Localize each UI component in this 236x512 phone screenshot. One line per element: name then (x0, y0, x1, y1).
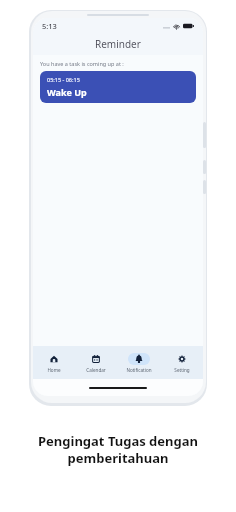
button[interactable]: Home (33, 353, 75, 373)
staticText: 5:13 (42, 21, 57, 31)
staticText: Setting (174, 367, 190, 373)
button[interactable]: Calendar (75, 353, 117, 373)
staticText: Pengingat Tugas dengan pemberitahuan (20, 432, 216, 467)
button[interactable]: 05:15 - 06:15 (40, 71, 196, 103)
staticText: Calendar (86, 367, 106, 373)
staticText: Wake Up (47, 86, 87, 98)
staticText: Notification (126, 367, 152, 373)
button[interactable]: Notification (117, 353, 160, 373)
staticText: 05:15 - 06:15 (47, 76, 80, 83)
staticText: You have a task is coming up at : (40, 60, 124, 67)
staticText: Reminder (95, 37, 141, 51)
staticText: Home (47, 367, 61, 373)
button[interactable]: Setting (160, 353, 203, 373)
